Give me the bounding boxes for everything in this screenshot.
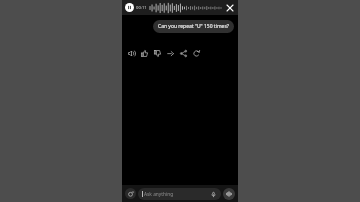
button[interactable]: Bad response bbox=[152, 48, 163, 59]
button[interactable]: Share bbox=[178, 48, 189, 59]
staticText: Can you repeat "U" 150 times? bbox=[158, 23, 229, 30]
button[interactable]: Read aloud bbox=[126, 48, 137, 59]
button[interactable]: Regenerate bbox=[191, 48, 202, 59]
button[interactable]: Ask anything bbox=[138, 188, 221, 200]
button[interactable]: Can you repeat "U" 150 times? bbox=[153, 20, 234, 33]
button[interactable]: Pause bbox=[125, 3, 134, 12]
button[interactable]: Close bbox=[224, 2, 235, 13]
button[interactable]: Camera bbox=[125, 188, 136, 199]
button[interactable]: Voice input bbox=[209, 190, 217, 198]
staticText: 00:11 bbox=[136, 5, 147, 11]
button[interactable]: Voice mode bbox=[223, 188, 235, 200]
button[interactable]: Edit bbox=[165, 48, 176, 59]
staticText: Ask anything bbox=[144, 191, 174, 198]
button[interactable]: Good response bbox=[139, 48, 150, 59]
